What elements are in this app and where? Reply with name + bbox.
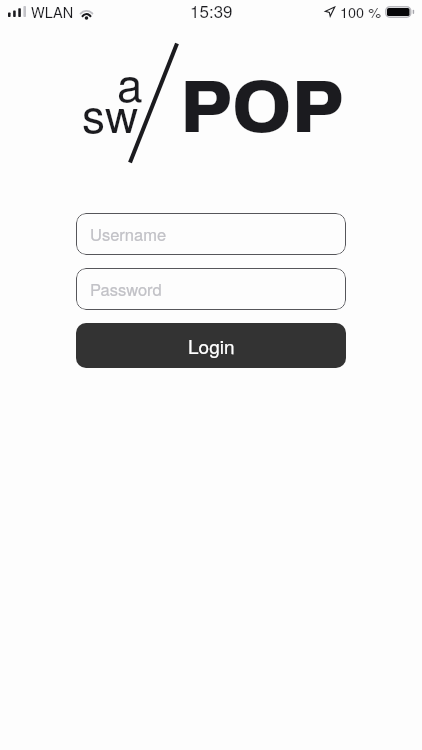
- staticText: Login: [188, 332, 235, 359]
- button[interactable]: Username: [76, 213, 346, 255]
- staticText: 100 %: [340, 1, 382, 22]
- staticText: 15:39: [190, 0, 233, 22]
- staticText: WLAN: [31, 1, 74, 22]
- staticText: Password: [90, 277, 162, 301]
- staticText: sw: [82, 80, 139, 146]
- button[interactable]: Password: [76, 268, 346, 310]
- staticText: POP: [180, 67, 344, 148]
- staticText: Username: [90, 222, 167, 246]
- staticText: a: [117, 49, 143, 115]
- button[interactable]: Login: [76, 323, 346, 368]
